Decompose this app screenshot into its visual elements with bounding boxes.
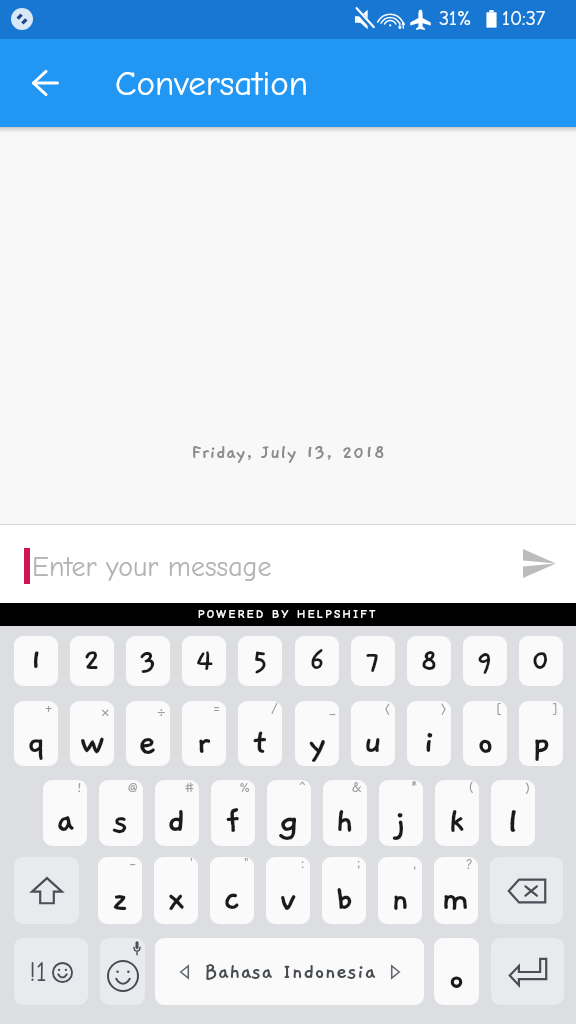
- button[interactable]: ]: [519, 701, 563, 766]
- staticText: [: [495, 702, 503, 717]
- staticText: 2: [83, 644, 101, 678]
- staticText: ×: [101, 702, 110, 722]
- staticText: 0: [531, 644, 551, 678]
- button[interactable]: Backspace: [490, 857, 563, 924]
- staticText: 1: [29, 644, 44, 678]
- button[interactable]: 1: [14, 636, 58, 686]
- staticText: =: [212, 702, 222, 717]
- button[interactable]: Enter: [491, 938, 564, 1005]
- button[interactable]: =: [182, 701, 226, 766]
- button[interactable]: _: [295, 701, 339, 766]
- button[interactable]: ": [210, 857, 254, 924]
- staticText: h: [335, 802, 355, 842]
- staticText: ): [524, 781, 531, 796]
- staticText: 8: [420, 644, 439, 678]
- button[interactable]: ?: [434, 857, 478, 924]
- staticText: d: [167, 802, 187, 842]
- button[interactable]: <: [351, 701, 395, 766]
- button[interactable]: 8: [407, 636, 451, 686]
- button[interactable]: Space, Bahasa Indonesia: [155, 938, 424, 1005]
- staticText: c: [223, 880, 241, 920]
- staticText: e: [138, 723, 158, 763]
- staticText: 4: [195, 644, 214, 678]
- staticText: t: [253, 723, 267, 763]
- button[interactable]: #: [155, 780, 199, 846]
- staticText: 10:37: [502, 7, 546, 30]
- staticText: j: [395, 802, 408, 842]
- staticText: 3: [139, 644, 158, 678]
- button[interactable]: /: [238, 701, 282, 766]
- staticText: 9: [476, 644, 494, 678]
- staticText: k: [448, 802, 466, 842]
- button[interactable]: 0: [519, 636, 563, 686]
- staticText: Bahasa Indonesia: [204, 960, 376, 984]
- staticText: w: [79, 723, 105, 763]
- staticText: !: [76, 781, 83, 796]
- staticText: *: [410, 781, 419, 796]
- staticText: :: [300, 858, 306, 873]
- staticText: p: [532, 723, 551, 763]
- staticText: Conversation: [115, 63, 309, 103]
- button[interactable]: Shift: [14, 857, 79, 924]
- staticText: <: [384, 702, 391, 717]
- button[interactable]: ÷: [126, 701, 170, 766]
- staticText: i: [423, 723, 436, 763]
- button[interactable]: Emoji and voice input: [100, 938, 145, 1005]
- button[interactable]: -: [98, 857, 142, 924]
- staticText: v: [279, 880, 298, 920]
- button[interactable]: 9: [463, 636, 507, 686]
- staticText: s: [113, 802, 129, 842]
- staticText: ;: [356, 858, 362, 873]
- button[interactable]: !: [43, 780, 87, 846]
- button[interactable]: 3: [126, 636, 170, 686]
- staticText: !1: [29, 956, 47, 988]
- button[interactable]: ': [154, 857, 198, 924]
- staticText: b: [335, 880, 354, 920]
- button[interactable]: 7: [351, 636, 395, 686]
- button[interactable]: Back: [19, 57, 71, 109]
- staticText: /: [271, 702, 278, 717]
- button[interactable]: 6: [295, 636, 339, 686]
- button[interactable]: >: [407, 701, 451, 766]
- staticText: z: [112, 880, 128, 920]
- staticText: u: [363, 723, 383, 763]
- staticText: _: [330, 702, 335, 717]
- button[interactable]: Send: [511, 535, 567, 591]
- button[interactable]: @: [99, 780, 143, 846]
- staticText: r: [196, 723, 212, 763]
- staticText: 31%: [439, 7, 472, 30]
- button[interactable]: 5: [238, 636, 282, 686]
- staticText: &: [351, 781, 363, 796]
- button[interactable]: &: [323, 780, 367, 846]
- button[interactable]: ×: [70, 701, 114, 766]
- staticText: ": [243, 858, 250, 873]
- staticText: -: [128, 858, 138, 873]
- staticText: ÷: [157, 702, 166, 722]
- staticText: >: [440, 702, 447, 717]
- button[interactable]: ;: [322, 857, 366, 924]
- button[interactable]: 4: [182, 636, 226, 686]
- staticText: #: [184, 781, 195, 796]
- button[interactable]: 2: [70, 636, 114, 686]
- staticText: g: [279, 802, 300, 842]
- staticText: n: [391, 880, 410, 920]
- button[interactable]: ,: [378, 857, 422, 924]
- staticText: a: [56, 802, 75, 842]
- button[interactable]: %: [211, 780, 255, 846]
- staticText: @: [127, 781, 139, 796]
- staticText: x: [167, 880, 186, 920]
- button[interactable]: ): [491, 780, 535, 846]
- staticText: ?: [465, 858, 474, 873]
- button[interactable]: :: [266, 857, 310, 924]
- button[interactable]: ^: [267, 780, 311, 846]
- staticText: ^: [298, 781, 307, 796]
- button[interactable]: *: [379, 780, 423, 846]
- button[interactable]: (: [435, 780, 479, 846]
- button[interactable]: +: [14, 701, 58, 766]
- staticText: o: [477, 723, 494, 763]
- staticText: 5: [252, 644, 269, 678]
- staticText: m: [441, 880, 471, 920]
- button[interactable]: Symbols: [14, 938, 88, 1005]
- button[interactable]: Period: [434, 938, 479, 1005]
- button[interactable]: [: [463, 701, 507, 766]
